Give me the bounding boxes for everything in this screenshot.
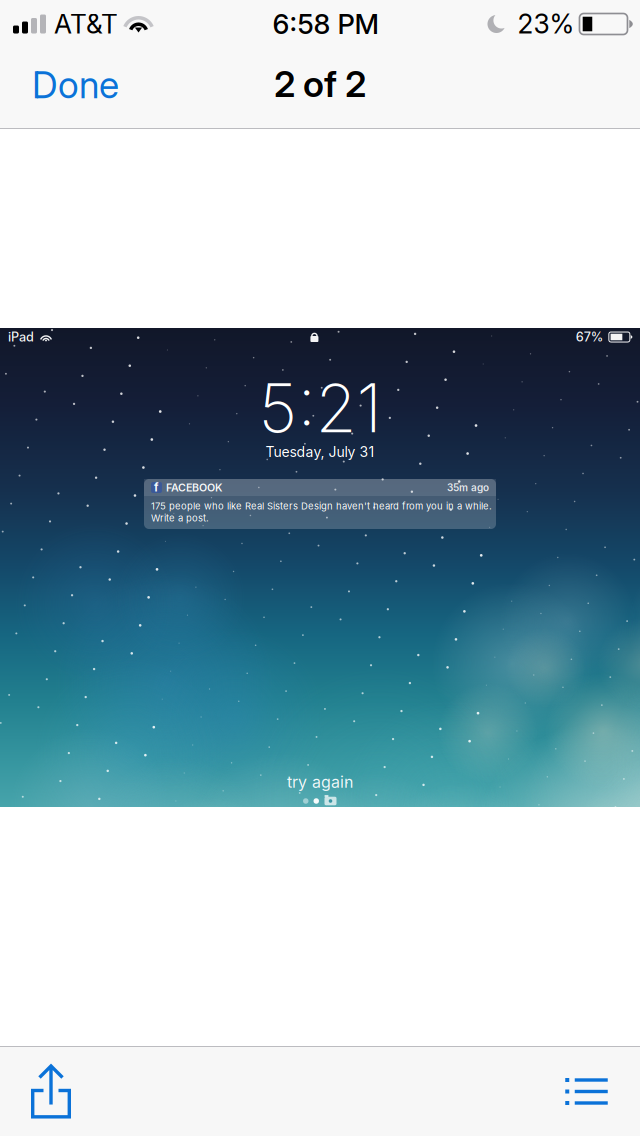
staticText: iPad (8, 329, 34, 345)
staticText: 5:21 (258, 368, 381, 448)
staticText: 2 of 2 (274, 62, 366, 106)
staticText: AT&T (54, 8, 118, 40)
button[interactable]: Show as list (549, 1051, 624, 1132)
staticText: Tuesday, July 31 (265, 443, 374, 460)
staticText: 23% (517, 8, 574, 40)
staticText: Write a post. (151, 512, 209, 524)
staticText: 35m ago (447, 481, 489, 494)
staticText: try again (287, 772, 353, 792)
button[interactable]: Done (0, 57, 142, 113)
staticText: FACEBOOK (166, 481, 223, 494)
staticText: f (154, 481, 159, 494)
staticText: 175 people who like Real Sisters Design … (151, 500, 492, 512)
button[interactable]: Share (15, 1048, 87, 1134)
staticText: 6:58 PM (272, 7, 379, 41)
staticText: 67% (576, 329, 604, 345)
staticText: Done (32, 63, 119, 107)
